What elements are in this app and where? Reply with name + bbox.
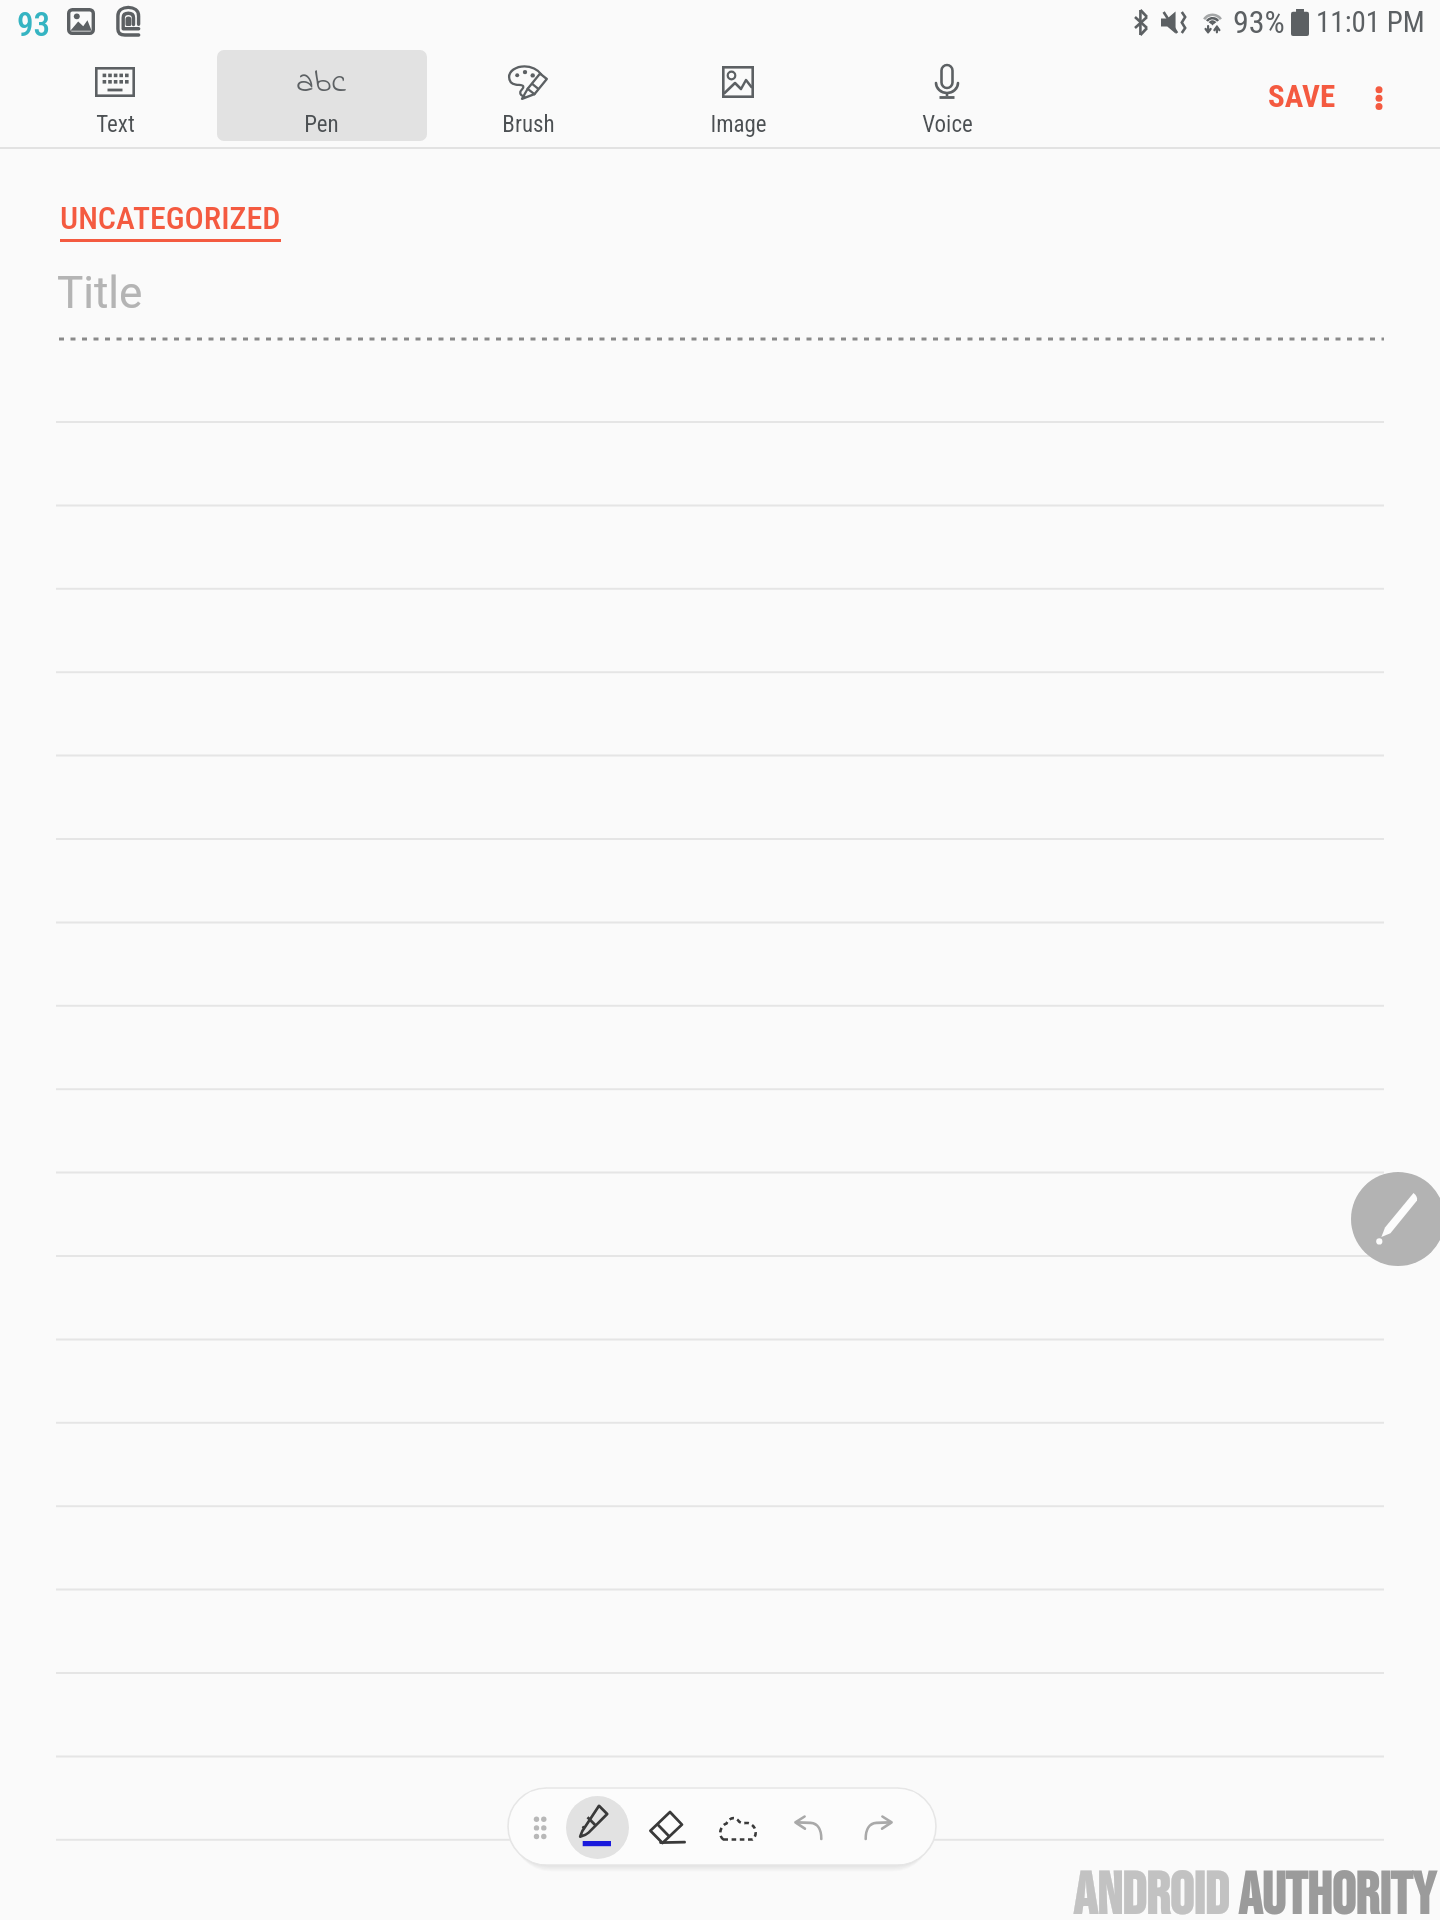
button[interactable]: Eraser (640, 1798, 690, 1848)
button[interactable]: abc (236, 48, 406, 142)
button[interactable]: Pen tool (566, 1796, 629, 1859)
button[interactable]: Text (30, 48, 200, 142)
button[interactable]: Redo (857, 1813, 897, 1847)
button[interactable]: Voice (862, 48, 1032, 142)
button[interactable]: More options (1357, 68, 1401, 112)
button[interactable]: Note drawing area (0, 350, 1440, 1850)
staticText: Voice (922, 111, 973, 137)
staticText: UNCATEGORIZED (60, 199, 281, 237)
staticText: abc (296, 59, 346, 103)
staticText: 93 (17, 5, 50, 44)
staticText: AUTHORITY (1238, 1861, 1436, 1920)
button[interactable]: Title (56, 262, 1384, 336)
staticText: Pen (304, 111, 339, 137)
button[interactable]: Selection (712, 1814, 762, 1846)
button[interactable]: Undo (790, 1813, 830, 1847)
button[interactable]: Move toolbar (524, 1810, 558, 1844)
staticText: ANDROID (1073, 1861, 1238, 1920)
button[interactable]: UNCATEGORIZED (60, 199, 281, 242)
button[interactable]: Image (653, 48, 823, 142)
staticText: Image (710, 111, 767, 137)
staticText: 11:01 PM (1316, 5, 1425, 39)
staticText: Text (96, 111, 135, 137)
staticText: SAVE (1268, 78, 1336, 114)
staticText: Title (57, 267, 143, 319)
staticText: Brush (502, 111, 555, 137)
button[interactable]: New pen note (1351, 1172, 1440, 1266)
button[interactable]: Brush (443, 48, 613, 142)
staticText: 93% (1233, 3, 1285, 41)
button[interactable]: SAVE (1254, 64, 1350, 128)
